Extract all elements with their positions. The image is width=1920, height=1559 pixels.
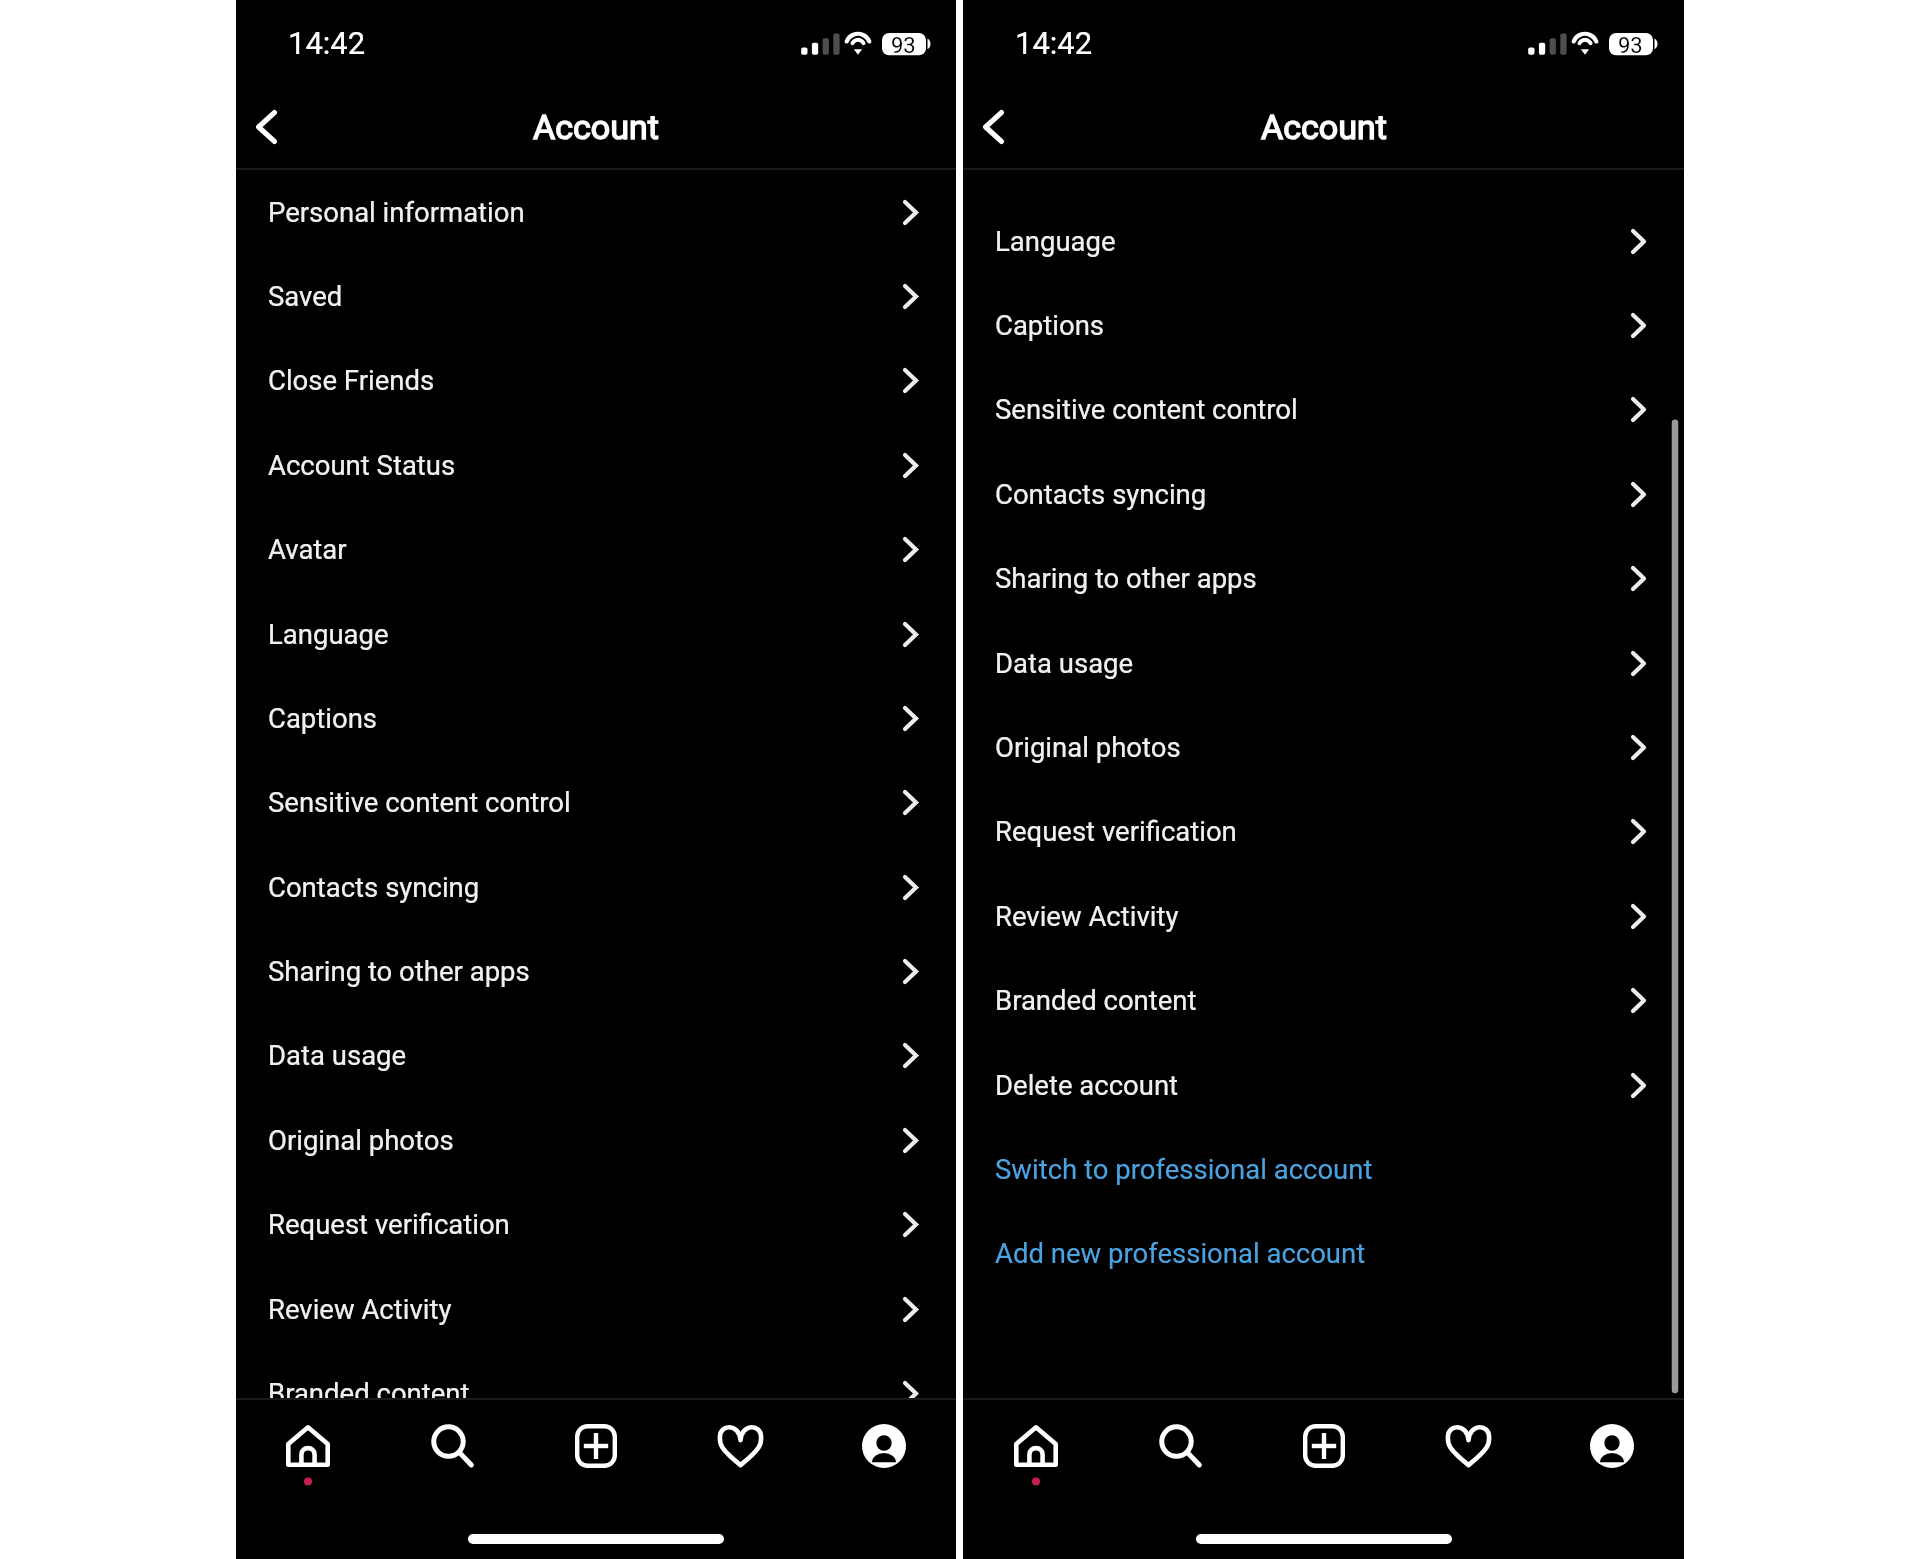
button[interactable]: Switch to professional account xyxy=(963,1127,1684,1211)
button[interactable]: Home xyxy=(963,1420,1108,1472)
button[interactable]: Sharing to other apps xyxy=(236,929,956,1013)
button[interactable]: Delete account xyxy=(963,1043,1684,1127)
button[interactable]: Branded content xyxy=(963,958,1684,1042)
staticText: Branded content xyxy=(268,1377,470,1409)
button[interactable]: Account Status xyxy=(236,423,956,507)
staticText: Contacts syncing xyxy=(995,478,1207,510)
button[interactable]: Language xyxy=(963,199,1684,283)
button[interactable]: Profile xyxy=(1540,1420,1684,1472)
staticText: 14:42 xyxy=(1015,25,1093,61)
button[interactable]: Back xyxy=(963,96,1023,158)
staticText: Switch to professional account xyxy=(995,1153,1373,1185)
staticText: Original photos xyxy=(268,1124,454,1156)
button[interactable]: Language xyxy=(236,592,956,676)
button[interactable]: Create xyxy=(1252,1420,1396,1472)
button[interactable]: Review Activity xyxy=(963,874,1684,958)
button[interactable]: Personal information xyxy=(236,170,956,254)
button[interactable]: Data usage xyxy=(963,621,1684,705)
staticText: Language xyxy=(268,618,389,650)
button[interactable]: Profile xyxy=(812,1420,956,1472)
staticText: Account Status xyxy=(268,449,456,481)
button[interactable]: Original photos xyxy=(963,705,1684,789)
button[interactable]: Avatar xyxy=(236,507,956,591)
button[interactable]: Search xyxy=(380,1420,524,1472)
button[interactable]: Close Friends xyxy=(236,338,956,422)
button[interactable]: Add new professional account xyxy=(963,1211,1684,1295)
button[interactable]: Activity xyxy=(668,1420,812,1472)
staticText: Delete account xyxy=(995,1069,1179,1101)
button[interactable]: Captions xyxy=(963,283,1684,367)
staticText: Account xyxy=(1261,107,1387,147)
staticText: Sensitive content control xyxy=(995,393,1298,425)
staticText: Branded content xyxy=(995,984,1197,1016)
staticText: Avatar xyxy=(268,533,347,565)
button[interactable]: Activity xyxy=(1396,1420,1540,1472)
staticText: Captions xyxy=(995,309,1105,341)
staticText: Sharing to other apps xyxy=(995,562,1257,594)
staticText: Sensitive content control xyxy=(268,786,571,818)
staticText: Request verification xyxy=(268,1208,510,1240)
staticText: Data usage xyxy=(995,647,1134,679)
button[interactable]: Contacts syncing xyxy=(963,452,1684,536)
button[interactable]: Sensitive content control xyxy=(963,367,1684,451)
staticText: Saved xyxy=(268,280,343,312)
staticText: Add new professional account xyxy=(995,1237,1366,1269)
button[interactable]: Data usage xyxy=(236,1013,956,1097)
staticText: Close Friends xyxy=(268,364,435,396)
staticText: 93 xyxy=(891,33,916,59)
staticText: Captions xyxy=(268,702,378,734)
staticText: Personal information xyxy=(268,196,525,228)
staticText: Original photos xyxy=(995,731,1181,763)
button[interactable]: Original photos xyxy=(236,1098,956,1182)
staticText: Request verification xyxy=(995,815,1237,847)
staticText: Review Activity xyxy=(268,1293,452,1325)
button[interactable]: Search xyxy=(1108,1420,1252,1472)
button[interactable]: Back xyxy=(236,96,296,158)
staticText: Sharing to other apps xyxy=(268,955,530,987)
staticText: Review Activity xyxy=(995,900,1179,932)
staticText: Language xyxy=(995,225,1116,257)
staticText: Data usage xyxy=(268,1039,407,1071)
button[interactable]: Saved xyxy=(236,254,956,338)
staticText: 93 xyxy=(1618,33,1643,59)
button[interactable]: Home xyxy=(236,1420,380,1472)
button[interactable]: Request verification xyxy=(963,789,1684,873)
staticText: 14:42 xyxy=(288,25,366,61)
button[interactable]: Sharing to other apps xyxy=(963,536,1684,620)
button[interactable]: Review Activity xyxy=(236,1267,956,1351)
button[interactable]: Contacts syncing xyxy=(236,845,956,929)
button[interactable]: Captions xyxy=(236,676,956,760)
button[interactable]: Request verification xyxy=(236,1182,956,1266)
staticText: Contacts syncing xyxy=(268,871,480,903)
staticText: Account xyxy=(533,107,659,147)
button[interactable]: Create xyxy=(524,1420,668,1472)
button[interactable]: Branded content xyxy=(236,1351,956,1435)
button[interactable]: Sensitive content control xyxy=(236,760,956,844)
